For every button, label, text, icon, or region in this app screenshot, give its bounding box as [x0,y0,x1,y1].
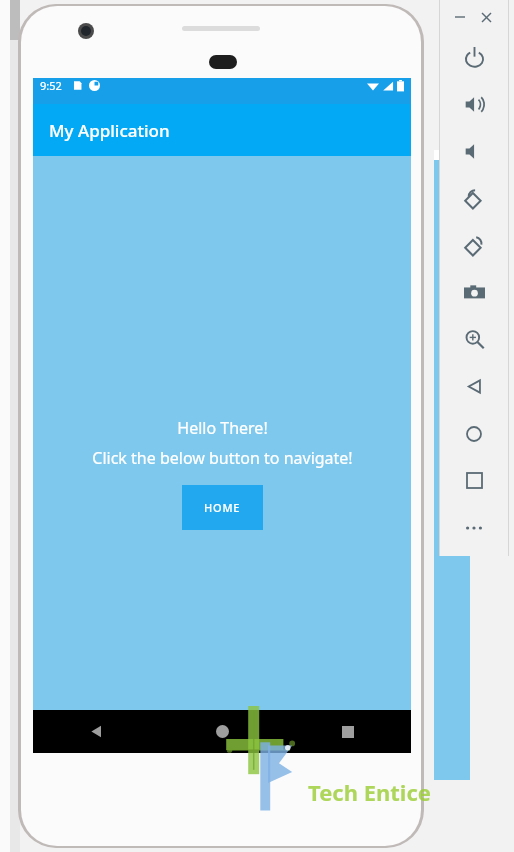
button[interactable]: Close [477,8,495,26]
button[interactable]: More [439,504,509,551]
staticText: Tech Entice [308,777,431,807]
button[interactable]: Overview [439,457,509,504]
button[interactable]: Back [439,363,509,410]
button[interactable]: Volume down [439,128,509,175]
button[interactable]: Home [159,710,285,753]
staticText: My Application [49,119,170,142]
staticText: 9:52 [40,78,62,93]
button[interactable]: Take screenshot [439,269,509,316]
button[interactable]: Power [439,34,509,81]
staticText: Click the below button to navigate! [92,447,353,469]
button[interactable]: Minimize [451,8,469,26]
button[interactable]: Back [33,710,159,753]
button[interactable]: Home [439,410,509,457]
button[interactable]: Rotate left [439,175,509,222]
button[interactable]: Zoom [439,316,509,363]
button[interactable]: Rotate right [439,222,509,269]
button[interactable]: HOME [182,485,263,530]
staticText: Hello There! [177,417,268,439]
button[interactable]: Recent apps [285,710,411,753]
staticText: HOME [204,500,241,515]
button[interactable]: Volume up [439,81,509,128]
